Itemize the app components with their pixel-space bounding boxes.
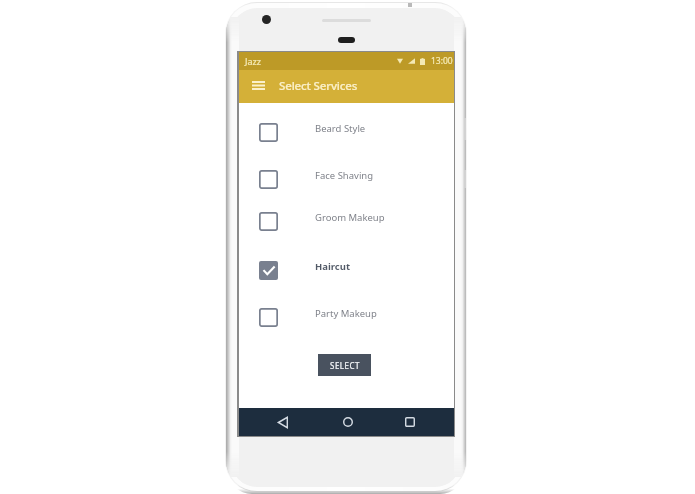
button[interactable]: Home — [330, 408, 366, 436]
staticText: Jazz — [245, 55, 261, 67]
staticText: Groom Makeup — [315, 211, 385, 224]
button[interactable]: SELECT — [318, 354, 371, 376]
button[interactable]: Back — [265, 408, 301, 436]
staticText: Face Shaving — [315, 169, 374, 182]
button[interactable]: Beard Style — [239, 123, 454, 142]
button[interactable]: Groom Makeup — [239, 212, 454, 231]
button[interactable]: Party Makeup — [239, 308, 454, 327]
staticText: SELECT — [330, 360, 360, 371]
staticText: 13:00 — [431, 55, 453, 67]
staticText: Select Services — [279, 78, 358, 94]
button[interactable]: Recent apps — [392, 408, 428, 436]
staticText: Party Makeup — [315, 307, 377, 320]
staticText: Beard Style — [315, 122, 366, 135]
button[interactable]: Haircut — [239, 261, 454, 280]
button[interactable]: Open navigation menu — [247, 72, 269, 98]
staticText: Haircut — [315, 260, 351, 273]
button[interactable]: Face Shaving — [239, 170, 454, 189]
